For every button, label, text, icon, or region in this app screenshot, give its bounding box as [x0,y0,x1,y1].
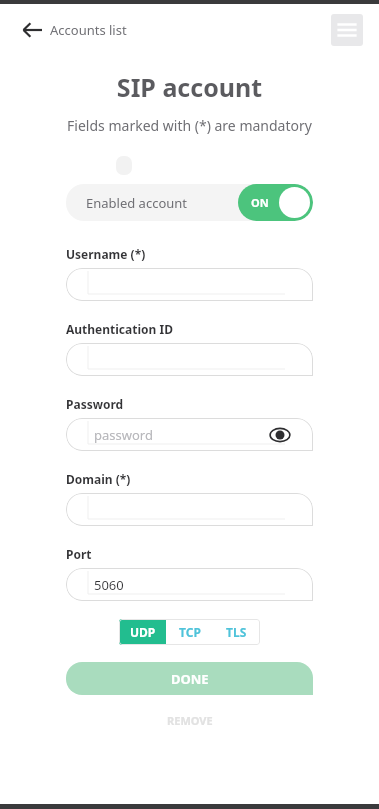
button[interactable]: Avatar [116,156,132,175]
staticText: Password [66,396,124,412]
staticText: REMOVE [167,713,213,728]
button[interactable]: Menu [331,14,363,46]
button[interactable]: Show password [269,424,291,446]
button[interactable]: DONE [66,662,313,695]
staticText: Enabled account [86,194,188,212]
staticText: TCP [179,624,201,640]
staticText: 5060 [94,576,124,594]
button[interactable]: TCP [166,619,213,645]
staticText: password [94,426,153,444]
staticText: Port [66,546,92,562]
staticText: Accounts list [50,21,127,39]
staticText: Fields marked with (*) are mandatory [0,116,379,135]
staticText: TLS [226,624,247,640]
button[interactable]: Enabled account [66,184,313,221]
button[interactable]: TLS [213,619,260,645]
button[interactable]: UDP [119,619,166,645]
button[interactable]: Accounts list [22,21,127,39]
button[interactable]: REMOVE [66,713,313,728]
staticText: SIP account [0,70,379,104]
staticText: DONE [171,670,209,688]
staticText: ON [251,195,269,210]
button[interactable] [66,268,313,301]
staticText: Authentication ID [66,321,173,337]
button[interactable] [66,343,313,376]
button[interactable] [66,493,313,526]
staticText: UDP [130,624,156,640]
staticText: Domain (*) [66,471,131,487]
button[interactable]: password [66,418,313,451]
button[interactable]: 5060 [66,568,313,601]
staticText: Username (*) [66,246,146,262]
